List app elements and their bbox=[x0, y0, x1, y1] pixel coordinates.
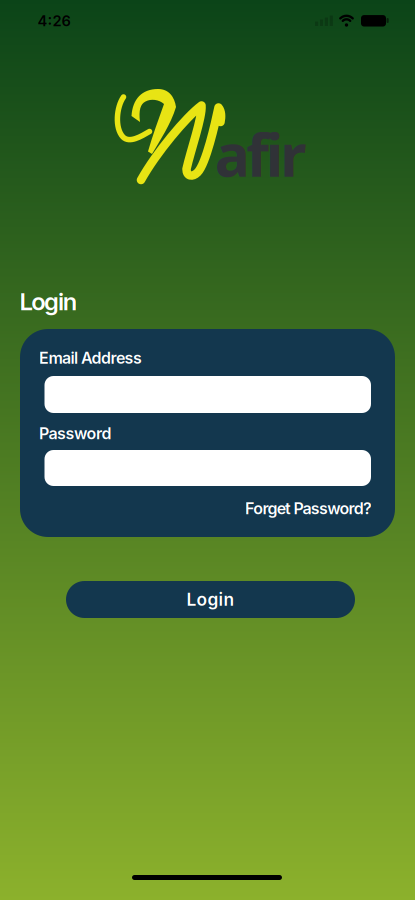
staticText: Login bbox=[19, 287, 77, 316]
staticText: Password bbox=[39, 424, 111, 443]
button[interactable]: Email Address bbox=[44, 376, 371, 413]
staticText: 4:26 bbox=[37, 12, 70, 30]
staticText: Forget Password? bbox=[245, 499, 372, 518]
staticText: afir bbox=[215, 114, 306, 194]
button[interactable]: Password bbox=[44, 450, 371, 486]
staticText: Login bbox=[186, 589, 234, 610]
button[interactable]: Login bbox=[66, 581, 355, 618]
staticText: Email Address bbox=[39, 349, 142, 367]
button[interactable]: Forget Password? bbox=[245, 499, 372, 518]
